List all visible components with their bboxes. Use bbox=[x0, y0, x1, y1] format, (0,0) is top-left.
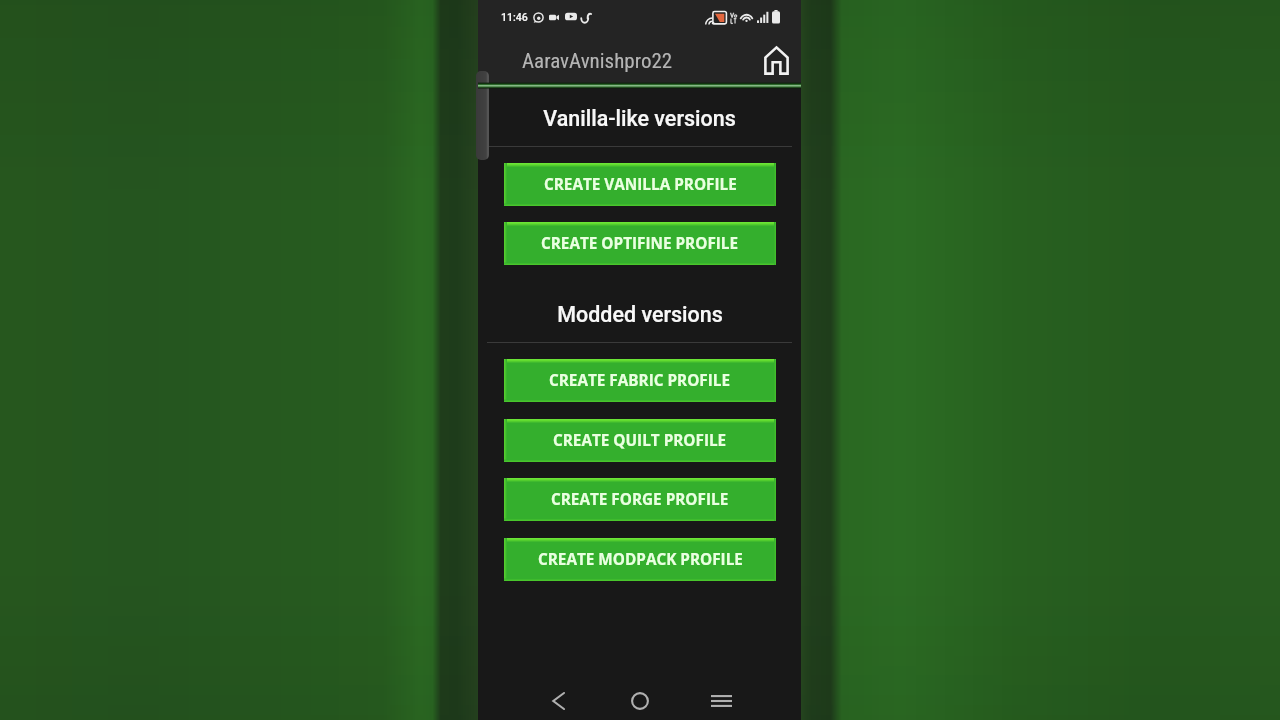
button[interactable]: CREATE FABRIC PROFILE bbox=[504, 359, 776, 402]
button[interactable]: CREATE VANILLA PROFILE bbox=[504, 163, 776, 206]
staticText: CREATE OPTIFINE PROFILE bbox=[541, 233, 739, 254]
button[interactable]: Home bbox=[759, 43, 793, 77]
staticText: CREATE FORGE PROFILE bbox=[551, 489, 729, 510]
button[interactable]: Home bbox=[619, 680, 661, 720]
staticText: CREATE FABRIC PROFILE bbox=[549, 370, 731, 391]
button[interactable]: CREATE QUILT PROFILE bbox=[504, 419, 776, 462]
staticText: CREATE VANILLA PROFILE bbox=[544, 174, 737, 195]
button[interactable]: CREATE MODPACK PROFILE bbox=[504, 538, 776, 581]
button[interactable]: CREATE FORGE PROFILE bbox=[504, 478, 776, 521]
staticText: Modded versions bbox=[557, 302, 723, 327]
button[interactable]: CREATE OPTIFINE PROFILE bbox=[504, 222, 776, 265]
button[interactable]: Back bbox=[537, 680, 579, 720]
button[interactable]: Recent apps bbox=[700, 680, 742, 720]
staticText: 11:46 bbox=[501, 11, 528, 23]
staticText: CREATE QUILT PROFILE bbox=[553, 430, 727, 451]
staticText: Vanilla-like versions bbox=[543, 106, 736, 131]
staticText: AaravAvnishpro22 bbox=[522, 49, 673, 74]
staticText: CREATE MODPACK PROFILE bbox=[538, 549, 743, 570]
